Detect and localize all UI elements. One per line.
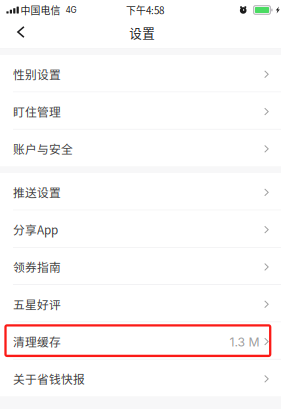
button[interactable]: 领券指南 [0,248,281,285]
button[interactable]: 推送设置 [0,173,281,210]
staticText: 盯住管理 [13,103,61,120]
staticText: 4G [66,5,77,15]
staticText: 分享App [13,221,58,238]
staticText: 关于省钱快报 [13,370,85,387]
staticText: 五星好评 [13,296,61,313]
staticText: 1.3 M [230,334,260,349]
staticText: 性别设置 [13,66,61,83]
button[interactable]: 清理缓存 [0,322,281,360]
button[interactable]: 性别设置 [0,55,281,92]
button[interactable]: 盯住管理 [0,92,281,130]
button[interactable]: 分享App [0,210,281,248]
staticText: 中国电信 [20,3,60,17]
staticText: 清理缓存 [13,333,61,350]
staticText: 账户与安全 [13,140,73,157]
staticText: 推送设置 [13,184,61,201]
button[interactable]: 五星好评 [0,285,281,322]
staticText: 设置 [129,23,155,41]
button[interactable]: 关于省钱快报 [0,360,281,396]
staticText: 领券指南 [13,258,61,275]
button[interactable]: 账户与安全 [0,130,281,166]
button[interactable]: Back [0,20,36,48]
staticText: 下午4:58 [126,3,164,17]
